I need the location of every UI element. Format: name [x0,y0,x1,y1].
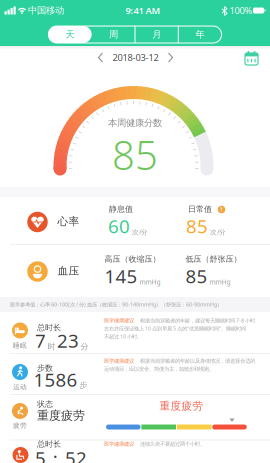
staticText: 医学健康建议 [104,358,134,364]
staticText: 中国移动 [28,5,64,16]
staticText: 分 [80,342,88,351]
staticText: 7 [35,328,46,353]
staticText: 85 [186,214,208,238]
staticText: 心率 [57,215,79,228]
staticText: 时 [47,342,55,351]
staticText: 85 [185,264,207,288]
staticText: 月 [152,29,161,40]
staticText: 运动 [13,383,27,391]
staticText: 步 [79,380,87,390]
staticText: 根据当前穿戴者的年龄以及身体情况，请选择合适的 [140,358,255,364]
staticText: 根据当前穿戴者的年龄，建议每天睡眠时间 7-8 小时 [140,317,255,324]
staticText: 重度疲劳 [37,408,85,423]
staticText: 60 [108,214,130,238]
staticText: 本周健康分数 [108,117,162,129]
staticText: 医学健康建议 [104,441,134,447]
staticText: 不超过 10 小时。 [104,333,142,340]
staticText: 静息值 [109,204,133,214]
staticText: 周 [109,29,118,40]
staticText: 2018-03-12 [112,51,158,64]
staticText: 总时长 [37,439,61,449]
button[interactable]: Info [218,206,225,213]
staticText: 次/分 [210,227,226,236]
button[interactable]: Next day [162,49,178,65]
staticText: 5：52 [35,446,87,463]
staticText: 低压（舒张压） [185,254,241,264]
staticText: 次/分 [132,227,148,236]
staticText: 1586 [33,367,77,392]
staticText: ? [220,206,223,213]
staticText: 血压 [57,264,79,277]
staticText: 医学健康建议 [104,317,134,324]
button[interactable]: 周 [92,26,135,43]
staticText: 睡眠 [13,341,27,350]
staticText: 天 [65,29,74,40]
button[interactable]: Calendar [242,49,260,67]
button[interactable]: 天 [48,26,92,43]
staticText: 疲劳 [13,421,27,430]
staticText: 重度疲劳 [159,399,203,412]
staticText: 运动项目，应以安全、简便为主，如散步和慢跑。 [104,366,214,372]
staticText: 23 [57,328,79,353]
button[interactable]: 年 [178,26,221,43]
staticText: 连续久坐不要超过两个小时。 [140,441,205,447]
staticText: 年 [195,29,204,40]
staticText: 高压（收缩压） [104,254,160,264]
staticText: 100% [229,4,252,17]
staticText: 总时长 [37,323,61,332]
staticText: 145 [104,264,137,288]
button[interactable]: 月 [135,26,178,43]
staticText: 左右并应保证晚上 10 点到早晨 5 点的“优质睡眠时间”。睡眠时间 [104,325,246,332]
button[interactable]: Previous day [93,49,109,65]
staticText: 医学参考值：心率 60-100(次 / 分) 血压（收缩压：90-140mmHg… [10,301,222,308]
staticText: mmHg [139,277,160,286]
staticText: 9:41 AM [125,4,160,17]
staticText: 状态 [37,399,53,409]
staticText: 日常值 [188,204,212,214]
staticText: 步数 [37,363,53,373]
staticText: 85 [112,128,158,181]
staticText: mmHg [209,277,230,286]
